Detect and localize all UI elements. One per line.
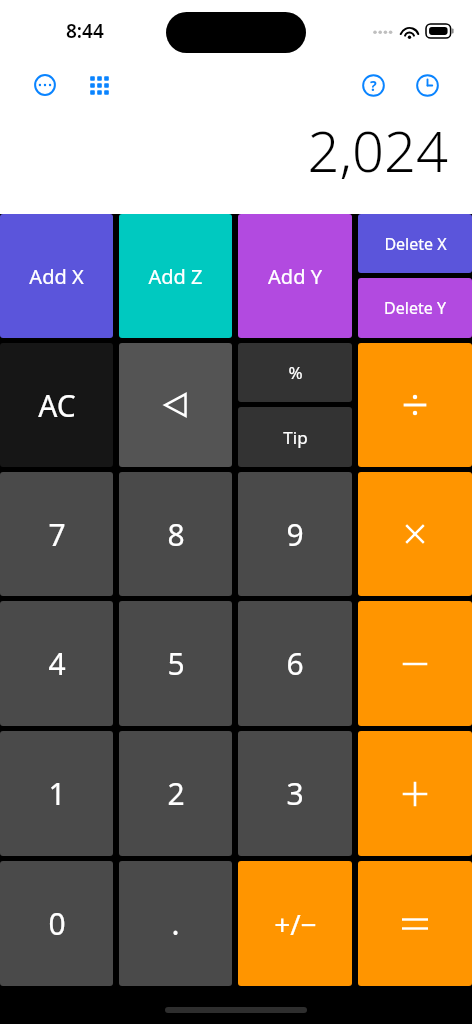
staticText: ?: [370, 76, 377, 95]
staticText: Delete X: [384, 233, 447, 255]
staticText: 7: [48, 514, 66, 555]
button[interactable]: 8: [119, 472, 232, 596]
button[interactable]: 3: [238, 731, 352, 856]
button[interactable]: Grid: [80, 66, 118, 104]
button[interactable]: History: [408, 66, 446, 104]
staticText: 4: [48, 643, 66, 684]
button[interactable]: Add Z: [119, 214, 232, 338]
staticText: 6: [286, 643, 304, 684]
button[interactable]: Add X: [0, 214, 113, 338]
button[interactable]: Minus: [358, 601, 472, 726]
staticText: Tip: [283, 426, 308, 449]
button[interactable]: Add Y: [238, 214, 352, 338]
button[interactable]: %: [238, 343, 352, 402]
button[interactable]: +/−: [238, 861, 352, 986]
staticText: 2: [167, 773, 185, 814]
button[interactable]: Plus: [358, 731, 472, 856]
button[interactable]: More options: [26, 66, 64, 104]
button[interactable]: Tip: [238, 407, 352, 467]
staticText: 9: [286, 514, 304, 555]
button[interactable]: AC: [0, 343, 113, 467]
staticText: 2,024: [307, 112, 448, 188]
button[interactable]: 9: [238, 472, 352, 596]
button[interactable]: .: [119, 861, 232, 986]
staticText: 5: [167, 643, 185, 684]
staticText: Add Y: [268, 263, 322, 290]
staticText: 8:44: [66, 18, 104, 44]
button[interactable]: Backspace: [119, 343, 232, 467]
button[interactable]: Delete Y: [358, 278, 472, 338]
staticText: 0: [48, 903, 66, 944]
staticText: Add Z: [148, 263, 203, 290]
button[interactable]: Divide: [358, 343, 472, 467]
button[interactable]: 5: [119, 601, 232, 726]
button[interactable]: 6: [238, 601, 352, 726]
button[interactable]: Multiply: [358, 472, 472, 596]
staticText: .: [171, 903, 180, 944]
staticText: 1: [48, 773, 66, 814]
button[interactable]: Help: [354, 66, 392, 104]
staticText: 3: [286, 773, 304, 814]
button[interactable]: 4: [0, 601, 113, 726]
button[interactable]: 7: [0, 472, 113, 596]
button[interactable]: 2: [119, 731, 232, 856]
button[interactable]: Equals: [358, 861, 472, 986]
staticText: +/−: [274, 905, 317, 943]
staticText: Delete Y: [384, 297, 446, 319]
staticText: %: [288, 361, 303, 384]
button[interactable]: 1: [0, 731, 113, 856]
staticText: 8: [167, 514, 185, 555]
button[interactable]: Delete X: [358, 214, 472, 273]
button[interactable]: 0: [0, 861, 113, 986]
staticText: Add X: [29, 263, 84, 290]
staticText: AC: [38, 385, 76, 426]
